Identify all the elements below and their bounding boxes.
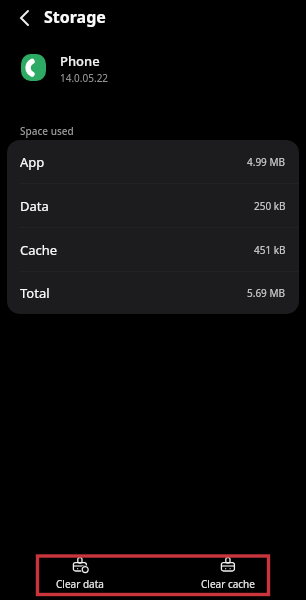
staticText: 5.69 MB <box>247 286 286 300</box>
button[interactable]: Clear data <box>36 557 124 591</box>
staticText: Storage <box>44 6 106 28</box>
staticText: Space used <box>20 124 74 138</box>
button[interactable] <box>10 4 38 32</box>
staticText: App <box>20 153 45 171</box>
staticText: 451 kB <box>254 243 286 257</box>
button[interactable]: Total <box>7 272 299 314</box>
staticText: Phone <box>60 52 100 70</box>
button[interactable]: Phone <box>12 46 292 88</box>
staticText: 250 kB <box>254 199 286 213</box>
staticText: Cache <box>20 241 58 259</box>
button[interactable]: Data <box>7 184 299 228</box>
staticText: 4.99 MB <box>247 155 286 169</box>
button[interactable]: Cache <box>7 228 299 272</box>
button[interactable]: App <box>7 140 299 184</box>
staticText: 14.0.05.22 <box>60 71 109 85</box>
button[interactable]: Clear cache <box>184 557 272 591</box>
staticText: Clear cache <box>201 577 255 591</box>
staticText: Clear data <box>56 577 104 591</box>
staticText: Total <box>20 284 50 302</box>
staticText: Data <box>20 197 49 215</box>
